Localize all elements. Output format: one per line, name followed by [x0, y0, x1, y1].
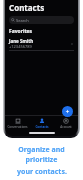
button[interactable]: Jane Smith: [5, 37, 78, 50]
staticText: Search: [16, 18, 29, 23]
button[interactable]: Account: [54, 115, 78, 130]
staticText: Contacts: [9, 2, 45, 13]
staticText: Jane Smith: [9, 38, 34, 44]
staticText: +123456789: [9, 44, 32, 49]
staticText: Organize and prioritize: [4, 145, 79, 165]
button[interactable]: Add contact: [62, 106, 73, 117]
button[interactable]: Contacts: [30, 115, 54, 130]
staticText: Conversations: [7, 125, 28, 129]
staticText: Favorites: [9, 28, 33, 35]
staticText: Contacts: [35, 125, 49, 129]
button[interactable]: Search: [9, 16, 74, 24]
staticText: your contacts.: [17, 167, 67, 177]
button[interactable]: Conversations: [5, 115, 30, 130]
staticText: Account: [60, 125, 72, 129]
